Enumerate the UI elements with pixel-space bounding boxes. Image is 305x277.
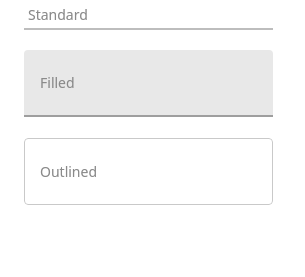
- button[interactable]: Outlined: [24, 138, 273, 205]
- button[interactable]: Filled: [24, 50, 273, 117]
- staticText: Filled: [40, 73, 75, 92]
- staticText: Outlined: [40, 162, 98, 181]
- staticText: Standard: [28, 5, 88, 24]
- button[interactable]: Standard: [24, 0, 273, 30]
